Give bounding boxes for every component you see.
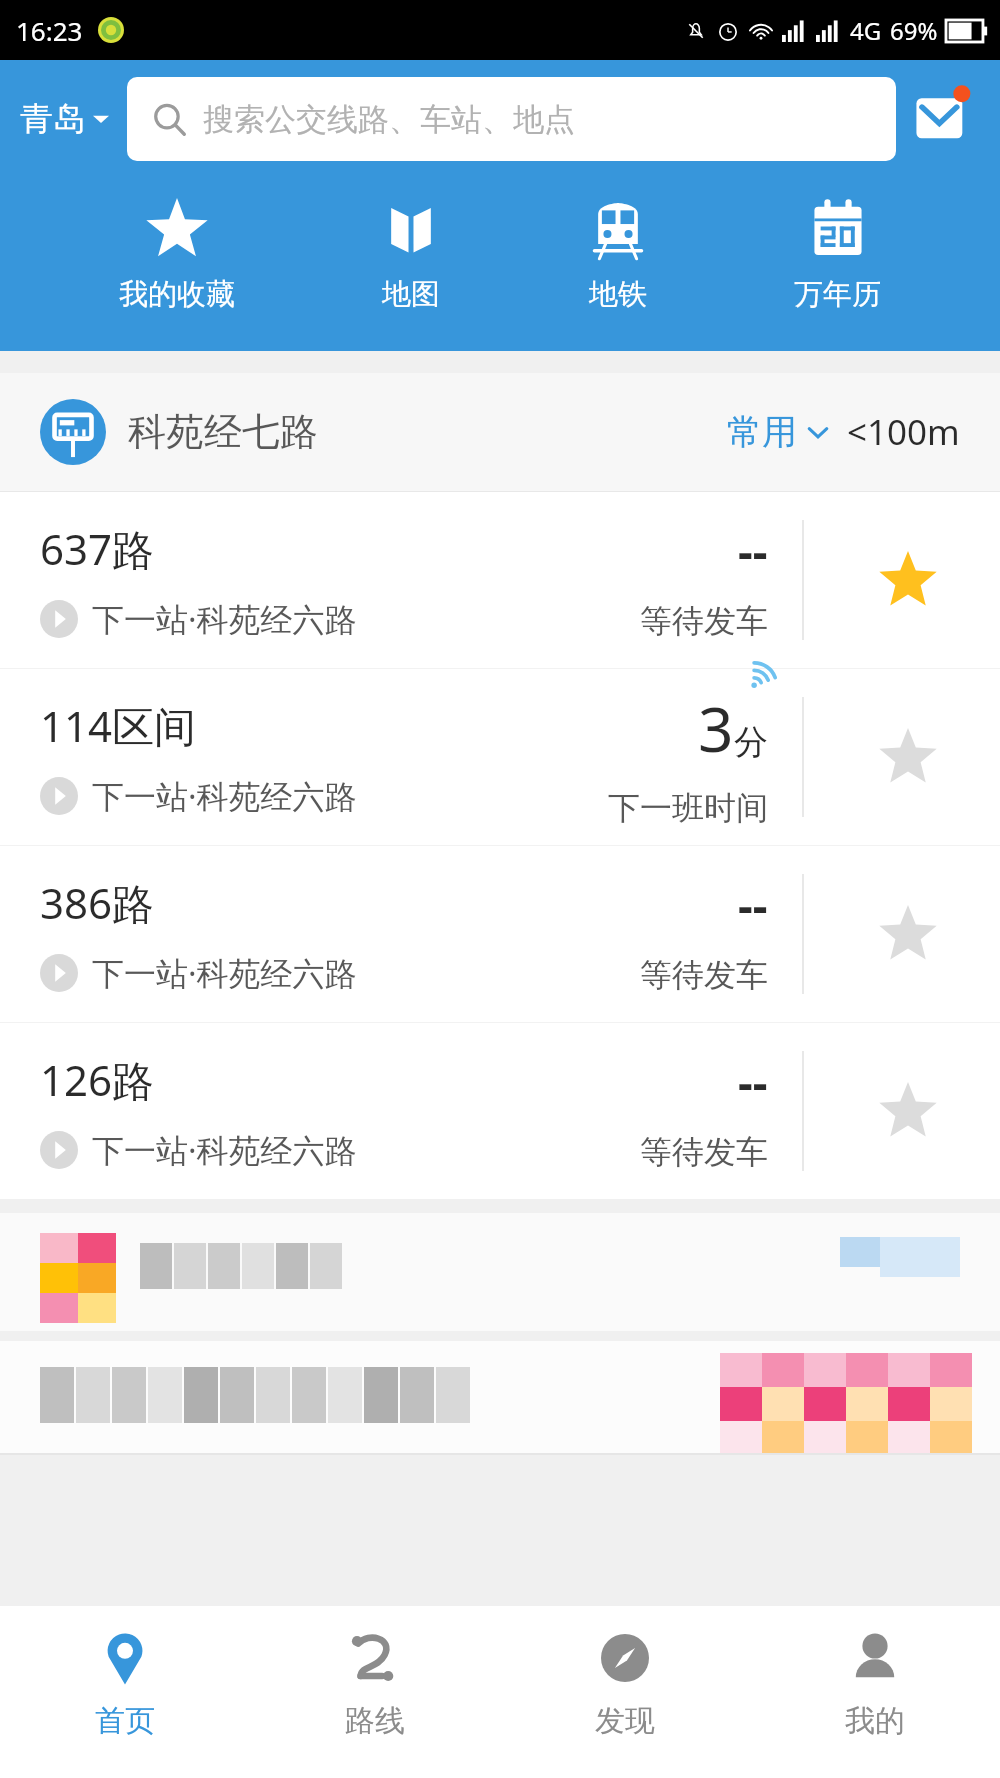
button[interactable]: 首页 — [0, 1606, 250, 1778]
staticText: -- — [738, 520, 768, 583]
button[interactable]: 路线 — [250, 1606, 500, 1778]
staticText: <100m — [847, 408, 960, 456]
button[interactable] — [0, 1213, 1000, 1331]
staticText: 16:23 — [16, 13, 83, 48]
staticText: 地图 — [382, 276, 440, 313]
staticText: 发现 — [595, 1702, 655, 1740]
button[interactable]: 我的 — [750, 1606, 1000, 1778]
staticText: 637路 — [40, 520, 155, 577]
staticText: 科苑经七路 — [128, 408, 318, 456]
staticText: 等待发车 — [640, 955, 768, 995]
staticText: 万年历 — [794, 276, 881, 313]
staticText: -- — [738, 1051, 768, 1114]
button[interactable]: 万年历 — [768, 194, 907, 317]
staticText: 搜索公交线路、车站、地点 — [203, 100, 575, 139]
button[interactable]: 126路 — [0, 1023, 1000, 1199]
button[interactable]: Add favourite — [862, 1065, 954, 1157]
button[interactable]: Add favourite — [862, 711, 954, 803]
staticText: 青岛 — [20, 98, 86, 140]
staticText: 386路 — [40, 874, 155, 931]
staticText: 4G — [850, 14, 882, 47]
staticText: 下一站·科苑经六路 — [92, 951, 357, 995]
staticText: 分 — [734, 721, 768, 764]
button[interactable]: 637路 — [0, 492, 1000, 668]
button[interactable]: 386路 — [0, 846, 1000, 1022]
button[interactable]: Add favourite — [862, 888, 954, 980]
staticText: 下一站·科苑经六路 — [92, 597, 357, 641]
staticText: 114区间 — [40, 697, 197, 754]
staticText: 69% — [890, 14, 938, 47]
button[interactable]: 发现 — [500, 1606, 750, 1778]
staticText: 126路 — [40, 1051, 155, 1108]
button[interactable]: Messages — [912, 82, 986, 156]
button[interactable]: 搜索公交线路、车站、地点 — [127, 77, 896, 161]
button[interactable]: 114区间 — [0, 669, 1000, 845]
staticText: 我的收藏 — [119, 276, 235, 313]
staticText: 常用 — [727, 410, 797, 454]
button[interactable]: 地铁 — [561, 194, 675, 317]
staticText: 我的 — [845, 1702, 905, 1740]
button[interactable]: 常用 — [721, 404, 835, 460]
staticText: 等待发车 — [640, 601, 768, 641]
staticText: -- — [738, 874, 768, 937]
button[interactable]: 地图 — [354, 194, 468, 317]
button[interactable]: 我的收藏 — [93, 194, 261, 317]
button[interactable]: 科苑经七路 — [0, 373, 1000, 491]
staticText: 下一班时间 — [608, 788, 768, 828]
staticText: 地铁 — [589, 276, 647, 313]
staticText: 路线 — [345, 1702, 405, 1740]
staticText: 3 — [698, 686, 734, 770]
button[interactable] — [0, 1341, 1000, 1453]
staticText: 首页 — [95, 1702, 155, 1740]
staticText: 下一站·科苑经六路 — [92, 774, 357, 818]
button[interactable]: 青岛 — [14, 90, 115, 148]
button[interactable]: Remove favourite — [862, 534, 954, 626]
staticText: 等待发车 — [640, 1132, 768, 1172]
staticText: 下一站·科苑经六路 — [92, 1128, 357, 1172]
